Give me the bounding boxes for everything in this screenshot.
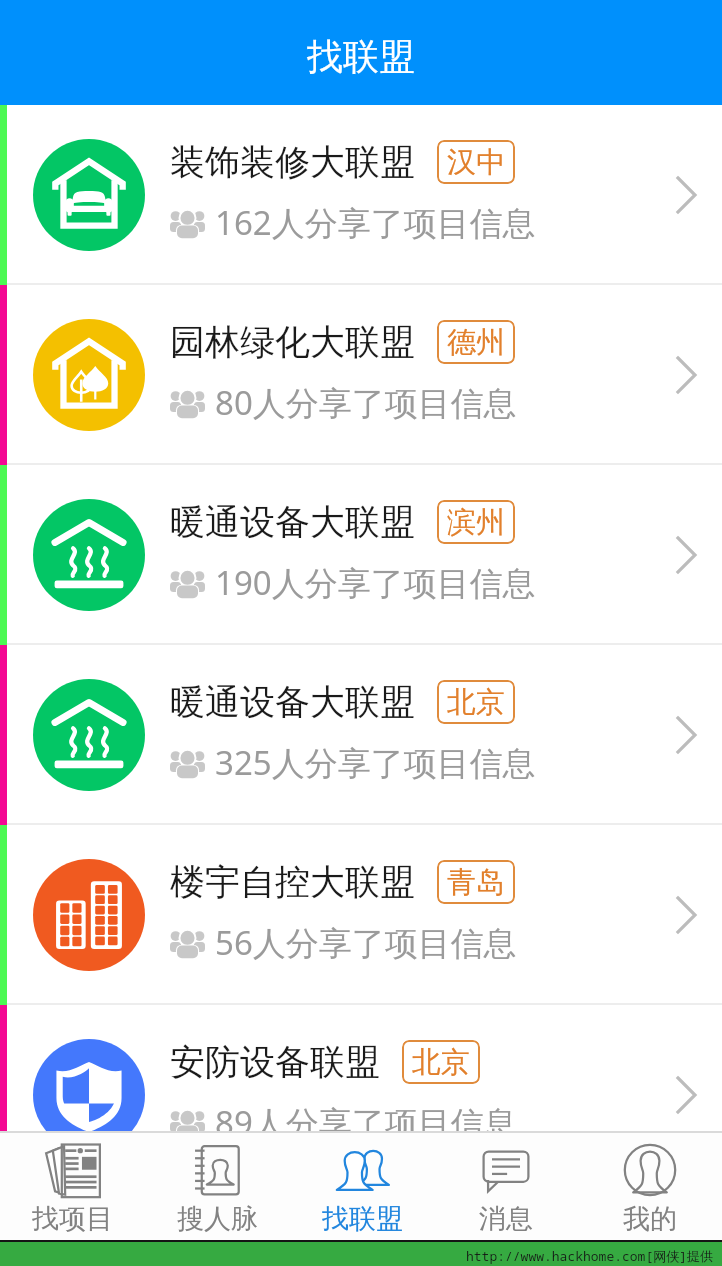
staticText: 德州: [447, 324, 505, 361]
button[interactable]: 暖通设备大联盟: [0, 465, 722, 645]
staticText: 装饰装修大联盟: [170, 140, 415, 184]
staticText: 汉中: [447, 144, 505, 181]
staticText: 暖通设备大联盟: [170, 500, 415, 544]
staticText: 找联盟: [322, 1202, 403, 1236]
button[interactable]: 楼宇自控大联盟: [0, 825, 722, 1005]
staticText: 搜人脉: [177, 1202, 258, 1236]
button[interactable]: 找项目: [0, 1131, 145, 1240]
button[interactable]: 园林绿化大联盟: [0, 285, 722, 465]
staticText: 滨州: [447, 504, 505, 541]
button[interactable]: 装饰装修大联盟: [0, 105, 722, 285]
staticText: 325人分享了项目信息: [215, 740, 536, 785]
staticText: 暖通设备大联盟: [170, 680, 415, 724]
staticText: 园林绿化大联盟: [170, 320, 415, 364]
button[interactable]: 搜人脉: [145, 1131, 290, 1240]
button[interactable]: 安防设备联盟: [0, 1005, 722, 1131]
staticText: 楼宇自控大联盟: [170, 860, 415, 904]
button[interactable]: 消息: [434, 1131, 578, 1240]
staticText: 56人分享了项目信息: [215, 920, 517, 965]
staticText: 北京: [412, 1044, 470, 1081]
button[interactable]: 暖通设备大联盟: [0, 645, 722, 825]
staticText: 找项目: [32, 1202, 113, 1236]
button[interactable]: 找联盟: [290, 1131, 434, 1240]
staticText: 我的: [623, 1202, 677, 1236]
staticText: 162人分享了项目信息: [215, 200, 536, 245]
staticText: 消息: [479, 1202, 533, 1236]
staticText: 安防设备联盟: [170, 1040, 380, 1084]
staticText: 青岛: [447, 864, 505, 901]
staticText: 190人分享了项目信息: [215, 560, 536, 605]
staticText: 找联盟: [307, 34, 415, 79]
staticText: 89人分享了项目信息: [215, 1100, 517, 1131]
staticText: 80人分享了项目信息: [215, 380, 517, 425]
button[interactable]: 我的: [578, 1131, 722, 1240]
staticText: 北京: [447, 684, 505, 721]
staticText: http://www.hackhome.com[网侠]提供: [466, 1247, 714, 1265]
